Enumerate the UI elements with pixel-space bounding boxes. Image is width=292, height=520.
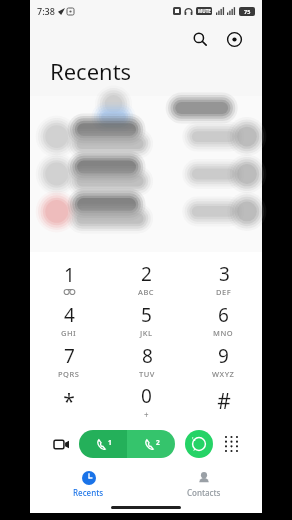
staticText: 1 [108,438,112,447]
button[interactable]: WhatsApp call [185,430,213,458]
button[interactable]: 6 [185,299,262,340]
staticText: 75 [244,8,251,15]
staticText: ABC [138,287,155,297]
staticText: WXYZ [212,369,235,379]
staticText: + [144,409,149,420]
button[interactable]: 1 [30,258,108,299]
button[interactable]: Video call [46,429,76,459]
staticText: GHI [61,328,77,338]
staticText: 4 [64,302,75,328]
staticText: JKL [140,328,153,338]
staticText: 7:38 [37,5,55,17]
button[interactable]: Account [220,25,248,53]
button[interactable]: 9 [185,340,262,381]
staticText: 0 [141,383,152,409]
button[interactable]: Contacts [146,466,262,502]
button[interactable]: 7 [30,340,108,381]
button[interactable]: 3 [185,258,262,299]
button[interactable]: Keypad [216,429,246,459]
staticText: 9 [218,343,229,369]
staticText: Recents [50,56,132,86]
staticText: 7 [64,343,75,369]
button[interactable]: * [30,381,108,422]
staticText: 2 [141,261,152,287]
staticText: PQRS [58,369,80,379]
staticText: DEF [216,287,232,297]
staticText: 1 [64,262,75,288]
staticText: MUTE [198,8,211,14]
staticText: 3 [219,261,230,287]
staticText: 6 [218,302,229,328]
staticText: TUV [139,369,155,379]
staticText: MNO [213,328,234,338]
staticText: Recents [73,487,104,498]
button[interactable]: 8 [108,340,185,381]
button[interactable]: Call with SIM 2 [127,430,175,458]
staticText: * [63,387,75,416]
staticText: 2 [156,438,160,447]
staticText: 8 [142,343,153,369]
button[interactable]: 0 [108,381,185,422]
button[interactable]: # [185,381,262,422]
button[interactable]: Call with SIM 1 [79,430,127,458]
button[interactable]: Search [186,25,214,53]
staticText: 5 [141,302,152,328]
staticText: Contacts [187,487,221,498]
button[interactable]: 5 [108,299,185,340]
button[interactable]: 4 [30,299,108,340]
button[interactable]: 2 [108,258,185,299]
button[interactable]: Recents [30,466,146,502]
staticText: # [217,387,231,416]
